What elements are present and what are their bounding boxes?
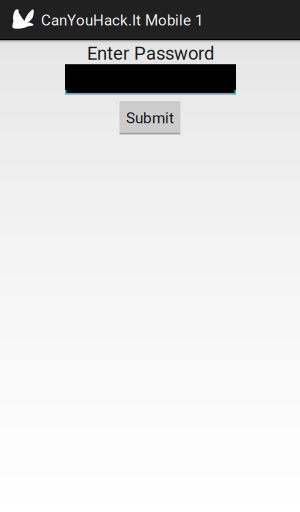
staticText: CanYouHack.It Mobile 1	[41, 12, 203, 29]
button[interactable]: Password	[65, 64, 236, 94]
staticText: Submit	[126, 109, 174, 127]
button[interactable]: Submit	[119, 101, 180, 135]
button[interactable]: CanYouHack.It Mobile 1	[0, 0, 210, 39]
staticText: Enter Password	[87, 43, 214, 64]
